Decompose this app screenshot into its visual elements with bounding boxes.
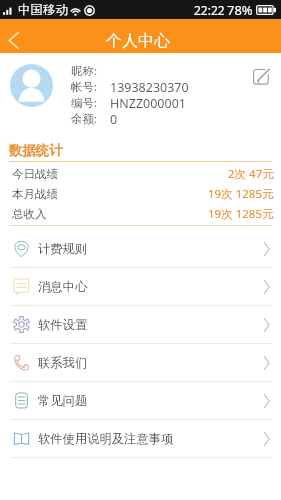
staticText: 78% xyxy=(227,1,253,19)
button[interactable]: 常见问题 xyxy=(0,382,281,420)
staticText: 19次 1285元 xyxy=(208,206,274,222)
button[interactable]: 联系我们 xyxy=(0,344,281,382)
staticText: 19次 1285元 xyxy=(208,186,274,202)
staticText: 消息中心 xyxy=(38,279,88,294)
button[interactable]: Back xyxy=(1,28,25,52)
staticText: 编号: xyxy=(71,95,98,111)
staticText: 13938230370 xyxy=(110,79,189,95)
staticText: 今日战绩 xyxy=(12,167,58,181)
staticText: 昵称: xyxy=(71,63,98,79)
staticText: HNZZ000001 xyxy=(110,95,186,111)
staticText: 数据统计 xyxy=(9,142,63,159)
staticText: 软件设置 xyxy=(38,317,88,332)
staticText: 0 xyxy=(110,111,118,127)
staticText: 联系我们 xyxy=(38,355,88,370)
staticText: 计费规则 xyxy=(38,241,88,256)
staticText: 中国移动 xyxy=(18,2,68,18)
button[interactable]: 软件设置 xyxy=(0,306,281,344)
staticText: 常见问题 xyxy=(38,393,88,408)
staticText: 22:22 xyxy=(194,2,225,18)
staticText: 本月战绩 xyxy=(12,187,58,201)
staticText: 软件使用说明及注意事项 xyxy=(38,431,174,446)
button[interactable]: 软件使用说明及注意事项 xyxy=(0,420,281,458)
button[interactable]: 计费规则 xyxy=(0,230,281,268)
button[interactable]: Edit profile xyxy=(250,65,272,87)
staticText: 总收入 xyxy=(12,207,47,221)
button[interactable]: 消息中心 xyxy=(0,268,281,306)
staticText: 个人中心 xyxy=(106,31,170,51)
staticText: 2次 47元 xyxy=(228,166,274,182)
staticText: 余额: xyxy=(71,111,98,127)
staticText: 帐号: xyxy=(71,79,98,95)
